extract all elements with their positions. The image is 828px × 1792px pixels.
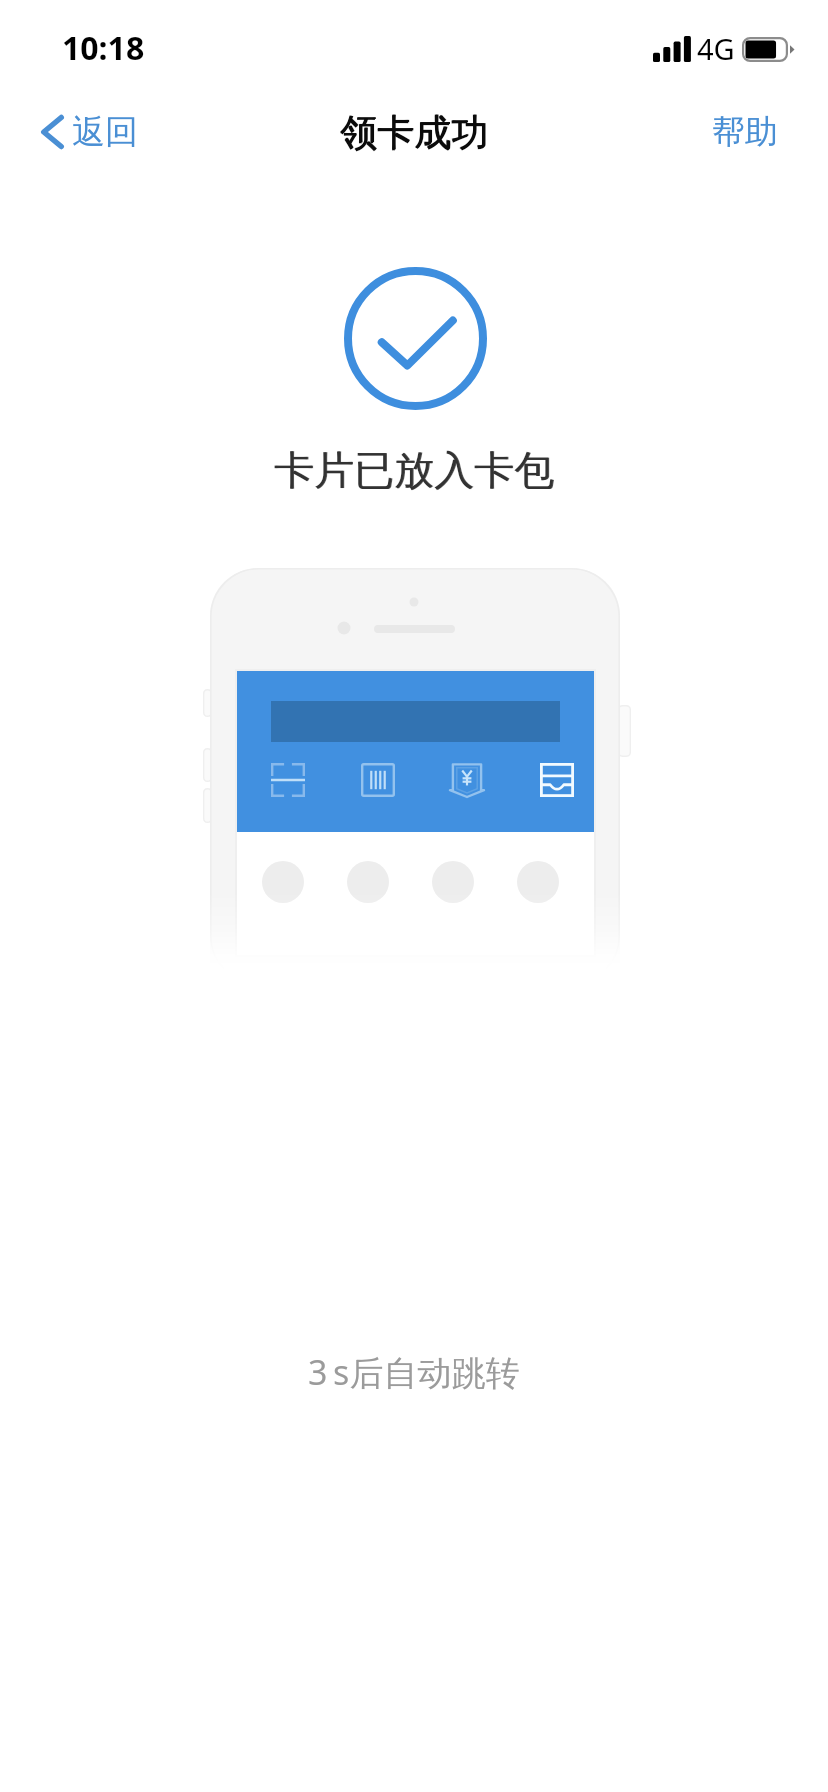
staticText: 帮助 <box>712 111 778 153</box>
staticText: 领卡成功 <box>340 109 488 156</box>
staticText: 10:18 <box>62 26 145 70</box>
button[interactable]: 帮助 <box>672 88 828 176</box>
staticText: 领卡成功 <box>340 110 488 157</box>
staticText: 3 s后自动跳转 <box>308 1349 520 1395</box>
staticText: 卡片已放入卡包 <box>274 445 554 495</box>
staticText: 领卡成功 <box>341 109 489 156</box>
button[interactable]: 返回 <box>25 88 154 176</box>
staticText: 返回 <box>72 111 138 153</box>
staticText: 卡片已放入卡包 <box>275 445 555 495</box>
staticText: 4G <box>697 29 735 68</box>
